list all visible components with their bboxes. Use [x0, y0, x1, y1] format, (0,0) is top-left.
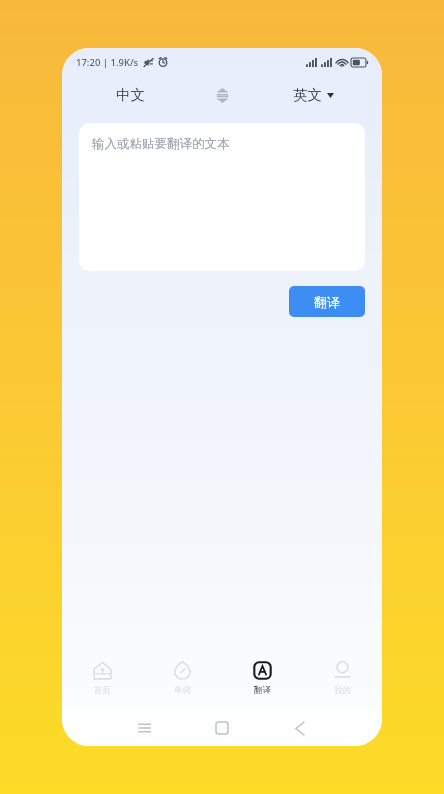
button[interactable]: 翻译 [222, 652, 302, 704]
staticText: 翻译 [314, 294, 340, 310]
button[interactable]: Swap languages [199, 76, 245, 114]
staticText: 17:20 | 1.9K/s [76, 56, 139, 69]
staticText: 中文 [116, 86, 145, 104]
button[interactable]: Recents [105, 710, 183, 746]
button[interactable]: 首页 [62, 652, 142, 704]
button[interactable]: 输入或粘贴要翻译的文本 [79, 123, 365, 271]
staticText: 英文 [293, 86, 322, 104]
button[interactable]: 单词 [142, 652, 222, 704]
staticText: 首页 [94, 685, 111, 696]
button[interactable]: 中文 [62, 76, 199, 114]
button[interactable]: Back [261, 710, 339, 746]
staticText: 翻译 [254, 685, 271, 696]
button[interactable]: 我的 [302, 652, 382, 704]
staticText: 我的 [334, 685, 351, 696]
staticText: 输入或粘贴要翻译的文本 [92, 136, 230, 152]
button[interactable]: 翻译 [289, 286, 365, 317]
button[interactable]: Home [183, 710, 261, 746]
button[interactable]: 英文 [245, 76, 382, 114]
staticText: 单词 [174, 685, 191, 696]
